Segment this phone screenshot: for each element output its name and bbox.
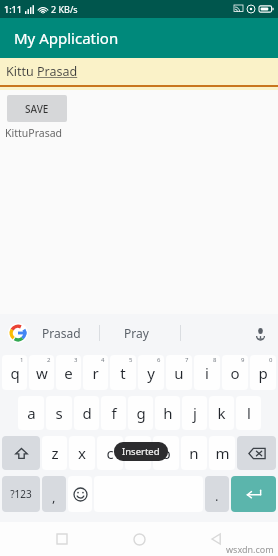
staticText: z	[51, 443, 59, 463]
button[interactable]: Home	[124, 524, 154, 554]
staticText: e	[64, 363, 73, 383]
button[interactable]: q	[2, 355, 27, 390]
staticText: 3	[74, 356, 78, 364]
button[interactable]: m	[209, 436, 235, 470]
staticText: o	[230, 363, 240, 383]
staticText: 4	[101, 356, 105, 364]
staticText: n	[189, 443, 199, 463]
button[interactable]: s	[46, 396, 72, 430]
staticText: b	[161, 443, 171, 463]
staticText: w	[36, 363, 48, 383]
button[interactable]: a	[18, 396, 44, 430]
staticText: 7	[185, 356, 189, 364]
button[interactable]: y	[138, 355, 164, 390]
staticText: My Application	[14, 28, 119, 48]
button[interactable]: t	[110, 355, 136, 390]
staticText: 9	[241, 356, 245, 364]
staticText: f	[111, 403, 117, 423]
staticText: KittuPrasad	[5, 126, 63, 140]
button[interactable]: Enter	[231, 476, 276, 512]
button[interactable]: z	[42, 436, 67, 470]
other: Shift	[2, 436, 40, 470]
staticText: l	[247, 403, 251, 423]
staticText: x	[78, 443, 86, 463]
staticText: Kittu	[6, 63, 37, 80]
button[interactable]: .	[205, 476, 229, 512]
staticText: 0	[269, 356, 273, 364]
staticText: j	[193, 403, 197, 423]
staticText: i	[205, 363, 209, 383]
button[interactable]: Kittu	[0, 58, 278, 87]
staticText: d	[82, 403, 92, 423]
staticText: a	[27, 403, 36, 423]
staticText: s	[55, 403, 63, 423]
button[interactable]: u	[166, 355, 192, 390]
button[interactable]: h	[155, 396, 180, 430]
button[interactable]: ,	[42, 476, 66, 512]
button[interactable]: j	[182, 396, 207, 430]
button[interactable]: ?123	[2, 476, 40, 512]
other: Emoji	[68, 476, 92, 512]
button[interactable]: Shift	[2, 436, 40, 470]
button[interactable]: d	[74, 396, 99, 430]
button[interactable]: Emoji	[68, 476, 92, 512]
staticText: r	[92, 363, 99, 383]
staticText: u	[174, 363, 184, 383]
staticText: v	[134, 443, 142, 463]
staticText: t	[120, 363, 126, 383]
staticText: y	[147, 363, 155, 383]
staticText: h	[163, 403, 173, 423]
button[interactable]: k	[209, 396, 234, 430]
staticText: m	[215, 443, 230, 463]
staticText: c	[106, 443, 114, 463]
staticText: ?123	[10, 487, 32, 501]
other: Backspace	[237, 436, 276, 470]
staticText: SAVE	[25, 102, 49, 116]
staticText: Prasad	[37, 63, 78, 80]
button[interactable]: f	[101, 396, 126, 430]
button[interactable]: Back	[201, 524, 231, 554]
button[interactable]: x	[69, 436, 95, 470]
button[interactable]: b	[153, 436, 179, 470]
button[interactable]: e	[56, 355, 81, 390]
staticText: 8	[213, 356, 217, 364]
staticText: 6	[157, 356, 161, 364]
button[interactable]: Voice input	[250, 323, 270, 343]
staticText: wsxdn.com	[226, 543, 274, 555]
staticText: Inserted	[122, 445, 160, 458]
staticText: 1	[20, 356, 24, 364]
button[interactable]: g	[128, 396, 153, 430]
button[interactable]: Pray	[124, 325, 149, 341]
button[interactable]: l	[236, 396, 261, 430]
other: Enter	[231, 476, 276, 512]
staticText: 5	[129, 356, 133, 364]
staticText: 2 KB/s	[51, 3, 78, 15]
button[interactable]: p	[250, 355, 276, 390]
button[interactable]: c	[97, 436, 123, 470]
button[interactable]: Prasad	[42, 325, 81, 341]
button[interactable]: o	[222, 355, 248, 390]
staticText: ,	[52, 488, 56, 506]
button[interactable]: Recents	[47, 524, 77, 554]
staticText: g	[136, 403, 146, 423]
staticText: k	[217, 403, 226, 423]
staticText: q	[10, 363, 20, 383]
button[interactable]: SAVE	[7, 95, 67, 122]
button[interactable]: r	[83, 355, 108, 390]
staticText: p	[258, 363, 268, 383]
button[interactable]: n	[181, 436, 207, 470]
button[interactable]: Backspace	[237, 436, 276, 470]
button[interactable]: i	[194, 355, 220, 390]
button[interactable]: v	[125, 436, 151, 470]
button[interactable]: w	[29, 355, 54, 390]
staticText: 2	[47, 356, 51, 364]
staticText: 1:11	[4, 3, 22, 15]
staticText: .	[215, 487, 219, 505]
